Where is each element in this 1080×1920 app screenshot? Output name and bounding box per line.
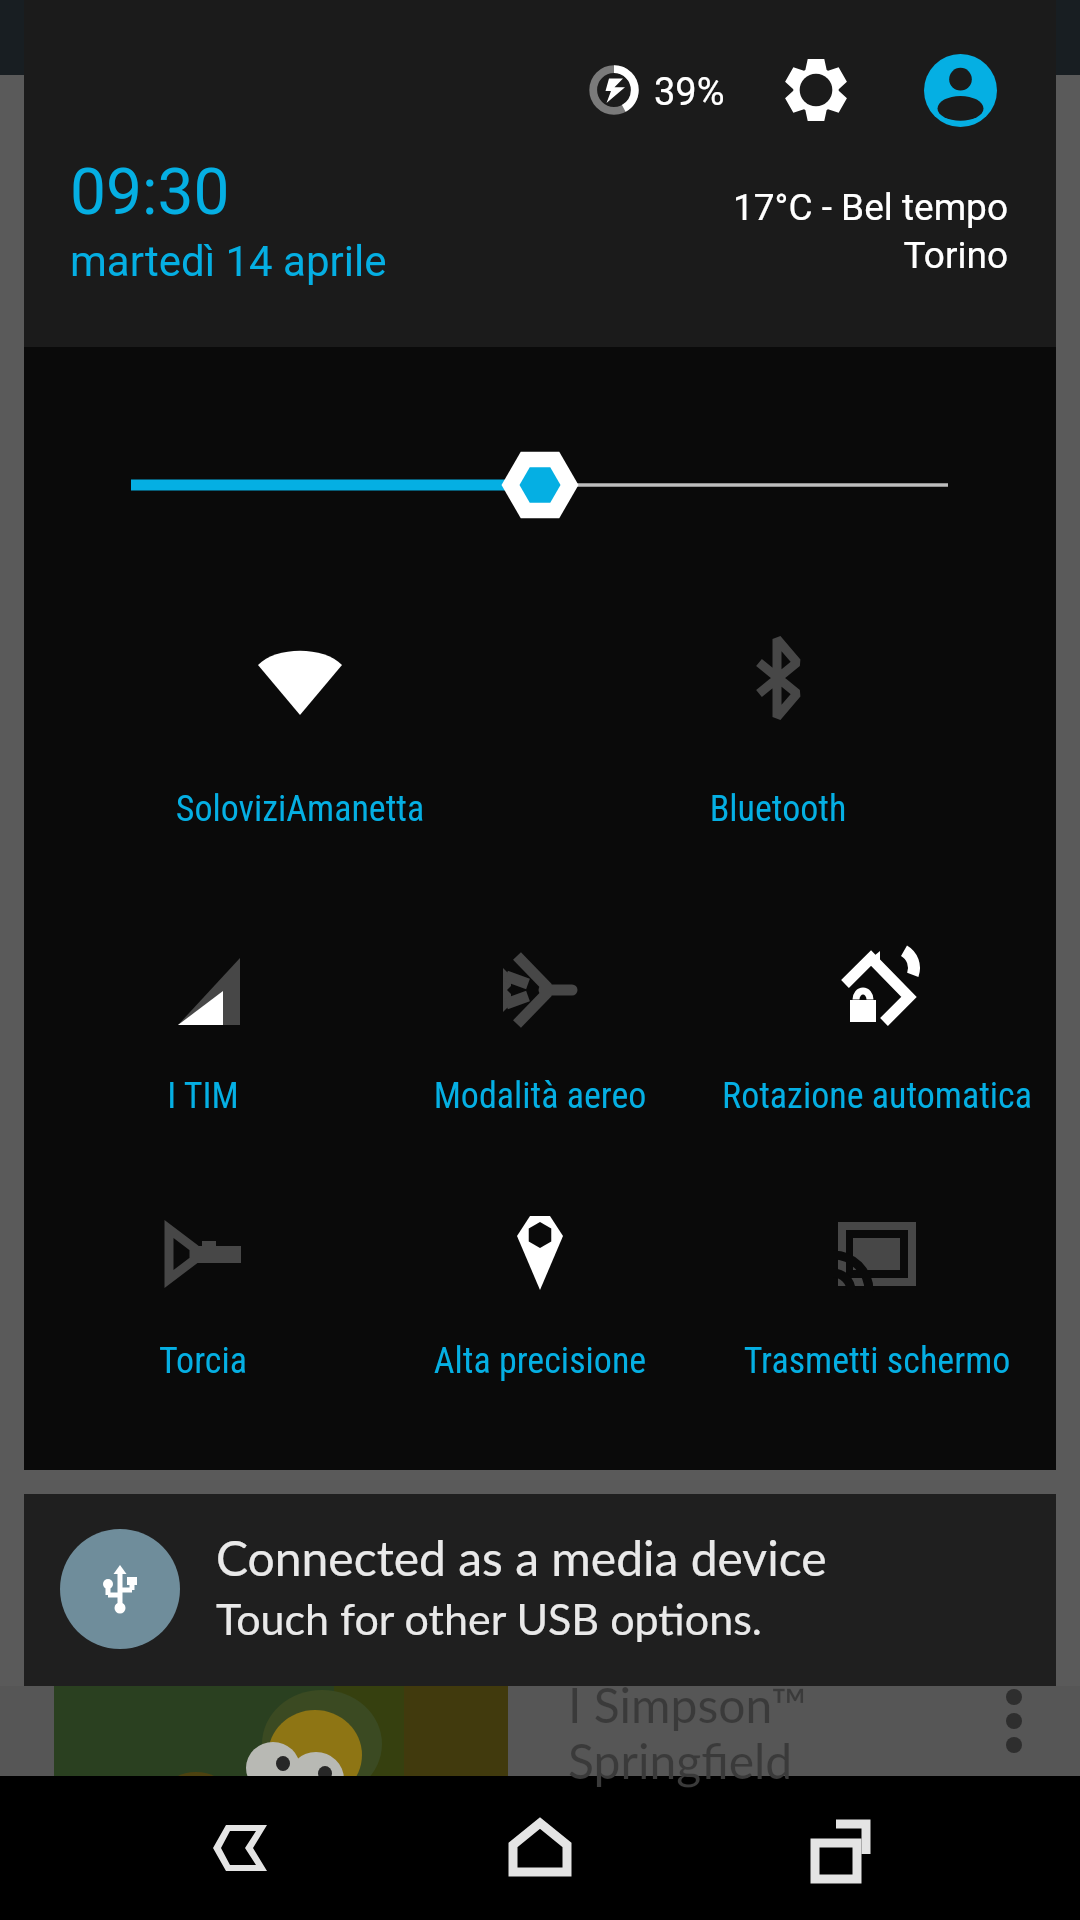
button[interactable]: Recent apps <box>760 1776 920 1920</box>
button[interactable]: Brightness <box>24 430 1056 542</box>
staticText: 39% <box>654 70 725 115</box>
staticText: Rotazione automatica <box>657 1075 1080 1117</box>
staticText: Torino <box>508 234 1008 277</box>
button[interactable]: Cast screen <box>767 1154 987 1424</box>
button[interactable]: Mobile network <box>93 891 313 1161</box>
button[interactable] <box>24 1494 1056 1686</box>
button[interactable]: Flashlight <box>93 1154 313 1424</box>
staticText: I TIM <box>0 1075 423 1117</box>
staticText: martedì 14 aprile <box>70 237 387 286</box>
staticText: Connected as a media device <box>216 1529 827 1587</box>
staticText: Touch for other USB options. <box>216 1593 762 1645</box>
staticText: Modalità aereo <box>320 1075 760 1117</box>
button[interactable]: Home <box>460 1776 620 1920</box>
button[interactable]: Back <box>160 1776 320 1920</box>
staticText: Torcia <box>0 1340 423 1382</box>
button[interactable]: Airplane mode <box>430 890 650 1160</box>
staticText: Bluetooth <box>558 788 998 830</box>
button[interactable]: Auto-rotate <box>767 890 987 1160</box>
button[interactable]: 09:30 <box>70 155 230 230</box>
button[interactable]: Bluetooth <box>668 578 888 848</box>
staticText: SoloviziAmanetta <box>80 788 520 830</box>
staticText: 09:30 <box>70 155 230 230</box>
button[interactable]: Settings <box>770 44 862 136</box>
button[interactable]: Location <box>430 1153 650 1423</box>
staticText: Springfield <box>568 1732 793 1790</box>
staticText: I Simpson™ <box>568 1676 808 1734</box>
staticText: Alta precisione <box>320 1340 760 1382</box>
button[interactable]: Wi-Fi <box>190 583 410 853</box>
button[interactable]: User profile <box>914 44 1006 136</box>
staticText: Trasmetti schermo <box>657 1340 1080 1382</box>
staticText: 17°C - Bel tempo <box>508 186 1008 229</box>
